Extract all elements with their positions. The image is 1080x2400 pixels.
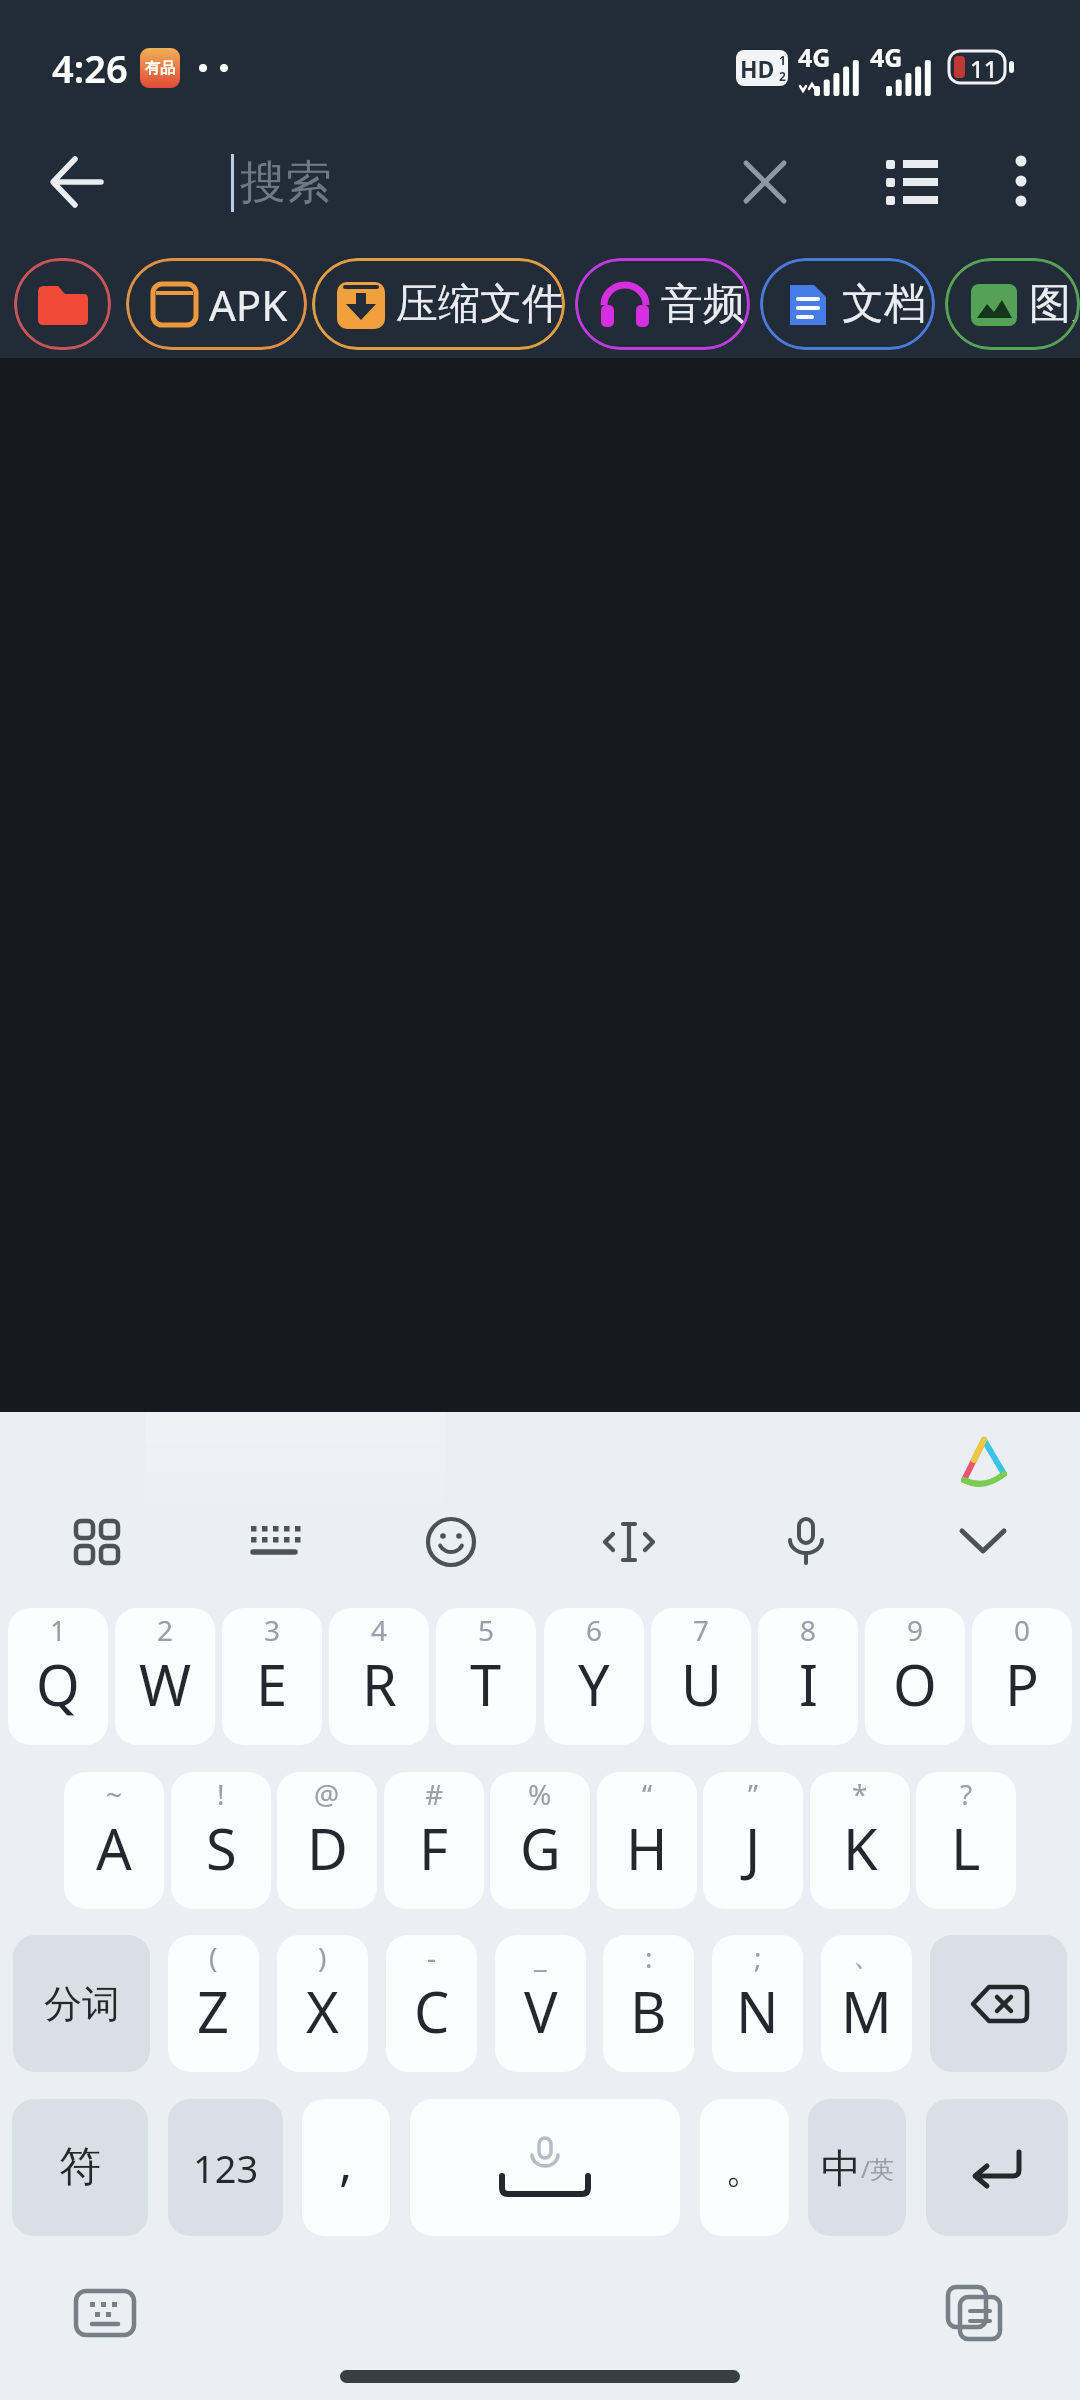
staticText: HD: [740, 53, 775, 84]
button[interactable]: [870, 140, 954, 224]
button[interactable]: [32, 138, 122, 228]
staticText: *: [852, 1775, 868, 1813]
button[interactable]: (: [168, 1935, 259, 2072]
staticText: W: [139, 1646, 192, 1722]
staticText: V: [524, 1973, 558, 2049]
button[interactable]: *: [810, 1772, 910, 1909]
staticText: 7: [693, 1611, 710, 1649]
staticText: 123: [193, 2142, 259, 2194]
button[interactable]: %: [490, 1772, 590, 1909]
button[interactable]: !: [171, 1772, 271, 1909]
button[interactable]: [422, 1513, 480, 1571]
button[interactable]: ”: [703, 1772, 803, 1909]
button[interactable]: [68, 1513, 126, 1571]
staticText: L: [951, 1810, 981, 1886]
button[interactable]: 1: [8, 1608, 108, 1745]
button[interactable]: 音频: [575, 258, 750, 350]
staticText: (: [209, 1938, 218, 1976]
staticText: A: [96, 1810, 132, 1886]
staticText: 音频: [661, 278, 745, 331]
button[interactable]: 中: [808, 2099, 906, 2236]
button[interactable]: 图片: [945, 258, 1080, 350]
staticText: 。: [725, 2143, 765, 2193]
staticText: ): [318, 1938, 327, 1976]
staticText: ?: [960, 1775, 973, 1813]
button[interactable]: 9: [865, 1608, 965, 1745]
staticText: J: [745, 1810, 761, 1886]
button[interactable]: 4: [329, 1608, 429, 1745]
staticText: U: [681, 1646, 722, 1722]
staticText: H: [626, 1810, 668, 1886]
button[interactable]: ~: [64, 1772, 164, 1909]
button[interactable]: @: [277, 1772, 377, 1909]
staticText: ~: [106, 1775, 123, 1813]
staticText: 1: [50, 1611, 67, 1649]
staticText: _: [534, 1938, 547, 1976]
button[interactable]: 。: [700, 2099, 789, 2236]
staticText: 6: [586, 1611, 603, 1649]
button[interactable]: ): [277, 1935, 368, 2072]
button[interactable]: 5: [436, 1608, 536, 1745]
staticText: 8: [800, 1611, 817, 1649]
staticText: ,: [339, 2128, 353, 2196]
staticText: 中: [821, 2143, 861, 2193]
button[interactable]: [930, 1935, 1067, 2072]
button[interactable]: :: [603, 1935, 694, 2072]
staticText: 压缩文件: [396, 278, 564, 331]
button[interactable]: [777, 1513, 835, 1571]
button[interactable]: [986, 146, 1056, 216]
button[interactable]: 123: [168, 2099, 283, 2236]
staticText: 、: [853, 1938, 881, 1973]
staticText: -: [427, 1938, 437, 1976]
button[interactable]: 符: [12, 2099, 148, 2236]
button[interactable]: APK: [126, 258, 307, 350]
staticText: S: [206, 1810, 237, 1886]
button[interactable]: 6: [544, 1608, 644, 1745]
staticText: “: [642, 1775, 653, 1813]
button[interactable]: #: [384, 1772, 484, 1909]
button[interactable]: 7: [651, 1608, 751, 1745]
button[interactable]: 文档: [760, 258, 935, 350]
button[interactable]: _: [495, 1935, 586, 2072]
staticText: M: [841, 1973, 892, 2049]
staticText: !: [217, 1775, 225, 1813]
button[interactable]: ,: [302, 2099, 390, 2236]
button[interactable]: [926, 2099, 1068, 2236]
staticText: 分词: [44, 1980, 120, 2028]
staticText: 0: [1014, 1611, 1031, 1649]
button[interactable]: [725, 142, 805, 222]
staticText: 文档: [842, 278, 926, 331]
button[interactable]: 2: [115, 1608, 215, 1745]
staticText: ”: [748, 1775, 759, 1813]
button[interactable]: 分词: [13, 1935, 150, 2072]
button[interactable]: 、: [821, 1935, 912, 2072]
button[interactable]: 0: [972, 1608, 1072, 1745]
staticText: F: [419, 1810, 449, 1886]
button[interactable]: “: [597, 1772, 697, 1909]
button[interactable]: [954, 1513, 1012, 1571]
button[interactable]: ?: [916, 1772, 1016, 1909]
staticText: 5: [478, 1611, 495, 1649]
button[interactable]: [245, 1513, 303, 1571]
staticText: 9: [907, 1611, 924, 1649]
staticText: 2: [157, 1611, 174, 1649]
button[interactable]: ;: [712, 1935, 803, 2072]
staticText: 搜索: [240, 154, 332, 212]
button[interactable]: [932, 2278, 1018, 2348]
staticText: O: [893, 1646, 937, 1722]
staticText: 4G: [870, 40, 903, 74]
button[interactable]: [600, 1513, 658, 1571]
button[interactable]: 压缩文件: [312, 258, 565, 350]
staticText: :: [645, 1938, 653, 1976]
button[interactable]: -: [386, 1935, 477, 2072]
staticText: @: [314, 1775, 340, 1813]
staticText: Q: [36, 1646, 80, 1722]
button[interactable]: 8: [758, 1608, 858, 1745]
button[interactable]: [14, 258, 111, 350]
staticText: D: [307, 1810, 348, 1886]
staticText: #: [425, 1775, 444, 1813]
button[interactable]: 3: [222, 1608, 322, 1745]
staticText: C: [414, 1973, 450, 2049]
button[interactable]: [62, 2278, 148, 2348]
button[interactable]: [410, 2099, 680, 2236]
